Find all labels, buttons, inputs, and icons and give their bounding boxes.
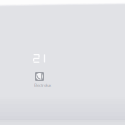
staticText: Electrolux [34, 82, 51, 88]
